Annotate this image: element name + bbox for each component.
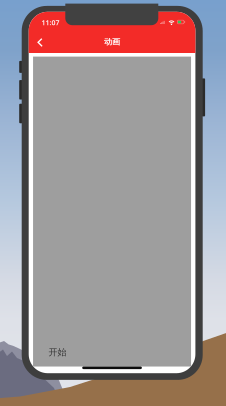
staticText: 动画: [104, 37, 120, 47]
button[interactable]: 开始: [33, 339, 74, 366]
button[interactable]: Back: [30, 32, 51, 53]
staticText: 11:07: [41, 18, 59, 27]
staticText: 开始: [48, 347, 66, 358]
